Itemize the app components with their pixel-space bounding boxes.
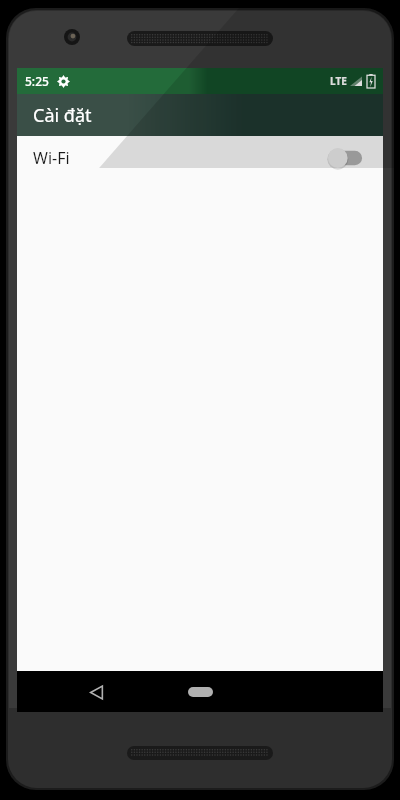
button[interactable]: Wi-Fi toggle, off: [323, 143, 369, 173]
staticText: Cài đặt: [33, 103, 92, 128]
button[interactable]: Wi-Fi: [17, 136, 383, 180]
staticText: Wi-Fi: [33, 147, 70, 169]
staticText: LTE: [330, 74, 347, 88]
button[interactable]: Back: [79, 675, 113, 709]
staticText: 5:25: [25, 73, 49, 89]
button[interactable]: Home: [180, 677, 220, 707]
